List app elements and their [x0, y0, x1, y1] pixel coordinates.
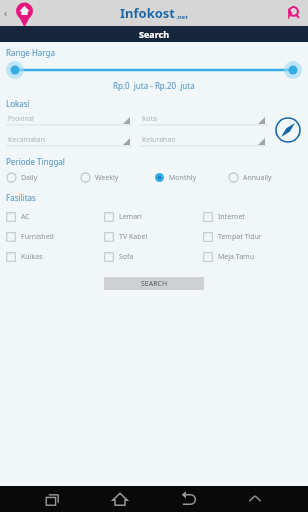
button[interactable]: AC: [6, 212, 104, 222]
button[interactable]: Tempat Tidur: [203, 232, 302, 242]
staticText: TV Kabel: [119, 232, 148, 242]
staticText: Internet: [218, 212, 245, 222]
button[interactable]: Search: [0, 26, 308, 42]
button[interactable]: Monthly: [154, 172, 228, 183]
button[interactable]: Annually: [228, 172, 302, 183]
button[interactable]: Daily: [6, 172, 80, 183]
staticText: Fasilitas: [6, 192, 36, 203]
staticText: SEARCH: [141, 279, 168, 289]
button[interactable]: Lemari: [104, 212, 203, 222]
staticText: .net: [176, 13, 188, 21]
button[interactable]: Kecamatan: [6, 133, 132, 147]
staticText: Kecamatan: [8, 135, 45, 145]
button[interactable]: Back: [175, 486, 201, 512]
staticText: Furnished: [21, 232, 54, 242]
button[interactable]: TV Kabel: [104, 232, 203, 242]
staticText: Daily: [21, 173, 38, 183]
button[interactable]: Internet: [203, 212, 302, 222]
button[interactable]: Furnished: [6, 232, 104, 242]
staticText: Rp.0 juta - Rp.20 juta: [113, 80, 195, 91]
staticText: Provinsi: [8, 114, 34, 124]
button[interactable]: Search: [284, 5, 300, 21]
staticText: AC: [21, 212, 30, 222]
staticText: Monthly: [169, 173, 197, 183]
button[interactable]: Use current location: [274, 116, 302, 144]
button[interactable]: Sofa: [104, 252, 203, 262]
button[interactable]: Kelurahan: [140, 133, 267, 147]
button[interactable]: Home: [107, 486, 133, 512]
button[interactable]: Provinsi: [6, 112, 132, 126]
staticText: Kota: [142, 114, 158, 124]
button[interactable]: Kota: [140, 112, 267, 126]
button[interactable]: [6, 60, 302, 80]
staticText: Infokost: [120, 4, 176, 22]
staticText: Range Harga: [6, 47, 55, 58]
button[interactable]: Recent apps: [40, 486, 66, 512]
staticText: Annually: [243, 173, 272, 183]
button[interactable]: Weekly: [80, 172, 154, 183]
staticText: Weekly: [95, 173, 119, 183]
staticText: Periode Tinggal: [6, 156, 65, 167]
button[interactable]: Meja Tamu: [203, 252, 302, 262]
staticText: Meja Tamu: [218, 252, 254, 262]
staticText: Sofa: [119, 252, 134, 262]
staticText: ‹: [4, 6, 8, 20]
staticText: Lokasi: [6, 98, 30, 109]
staticText: Tempat Tidur: [218, 232, 262, 242]
button[interactable]: SEARCH: [104, 277, 204, 290]
button[interactable]: Show notifications: [242, 486, 268, 512]
staticText: Search: [139, 28, 170, 40]
staticText: Kulkas: [21, 252, 43, 262]
button[interactable]: Infokost home: [12, 1, 37, 26]
staticText: Lemari: [119, 212, 142, 222]
staticText: Kelurahan: [142, 135, 176, 145]
button[interactable]: Kulkas: [6, 252, 104, 262]
